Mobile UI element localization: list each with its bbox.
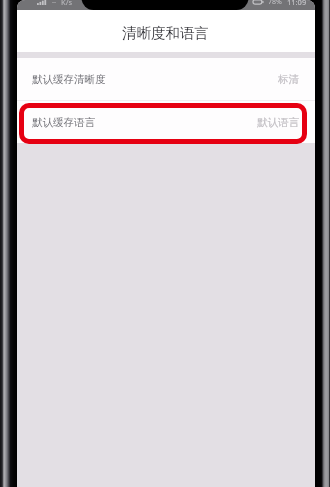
other: Mobile signal bbox=[37, 0, 47, 5]
staticText: 默认缓存语言 bbox=[32, 116, 95, 129]
staticText: 默认语言 bbox=[257, 116, 299, 129]
staticText: ·· bbox=[52, 0, 57, 7]
staticText: 默认缓存清晰度 bbox=[32, 73, 106, 86]
staticText: K/s bbox=[61, 0, 73, 7]
staticText: 11:09 bbox=[287, 0, 307, 7]
staticText: 78% bbox=[268, 0, 282, 7]
staticText: 标清 bbox=[278, 73, 299, 86]
other: Battery bbox=[253, 0, 264, 5]
staticText: 清晰度和语言 bbox=[122, 24, 209, 42]
button[interactable]: 默认缓存清晰度 bbox=[17, 58, 315, 100]
button[interactable]: 默认缓存语言 bbox=[17, 101, 315, 143]
